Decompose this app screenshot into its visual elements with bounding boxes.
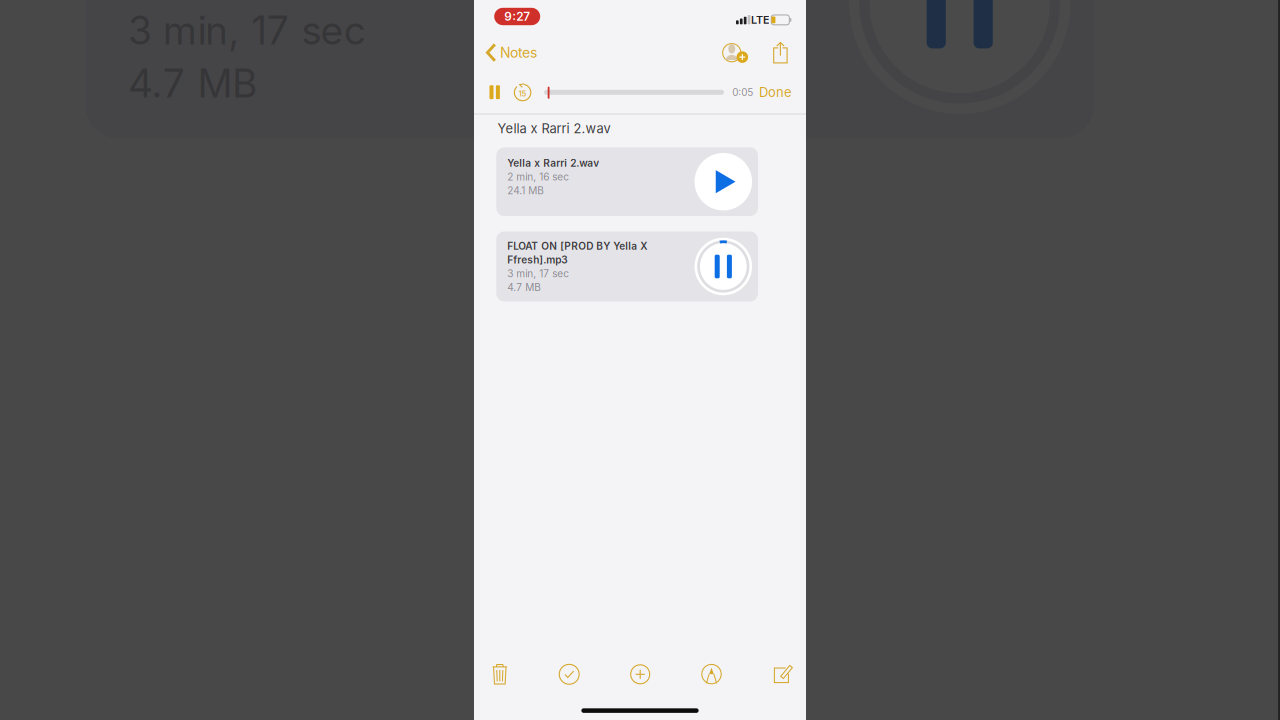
button[interactable]: Yella x Rarri 2.wav	[496, 147, 758, 216]
staticText: 9:27	[504, 9, 530, 24]
staticText: 3 min, 17 sec	[507, 267, 569, 280]
button[interactable]: Done	[753, 78, 798, 106]
staticText: FLOAT ON [PROD BY Yella X	[506, 243, 646, 255]
staticText: 24.1 MB	[507, 184, 544, 197]
button[interactable]: Skip back 15 seconds	[510, 84, 534, 106]
staticText: 3 min, 17 sec	[506, 270, 568, 283]
staticText: Yella x Rarri 2.wav	[496, 124, 609, 139]
staticText: 9:27	[503, 12, 529, 27]
staticText: Ffresh].mp3	[507, 254, 567, 266]
staticText: 15	[517, 92, 525, 101]
staticText: 15	[518, 89, 526, 98]
staticText: Notes	[500, 44, 537, 61]
button[interactable]: Pause	[482, 84, 506, 106]
staticText: 2 min, 16 sec	[506, 174, 568, 186]
button[interactable]: Delete	[478, 654, 522, 694]
button[interactable]: Share	[765, 37, 795, 69]
staticText: 4.7 MB	[506, 284, 540, 296]
staticText: 2 min, 16 sec	[507, 171, 569, 183]
staticText: Ffresh].mp3	[506, 257, 566, 269]
staticText: LTE	[750, 16, 769, 29]
button[interactable]: New note	[761, 654, 805, 694]
button[interactable]: Add attachment	[618, 654, 662, 694]
button[interactable]: New note	[760, 657, 804, 697]
button[interactable]: Notes	[480, 38, 550, 68]
staticText: 24.1 MB	[506, 187, 543, 200]
button[interactable]: Notes	[479, 41, 549, 71]
staticText: FLOAT ON [PROD BY Yella X	[507, 240, 647, 252]
button[interactable]: Markup	[688, 657, 732, 697]
button[interactable]: Yella x Rarri 2.wav	[495, 150, 757, 219]
button[interactable]: Checklist	[547, 654, 591, 694]
button[interactable]: Add People	[717, 37, 753, 69]
button[interactable]: Delete	[477, 657, 521, 697]
button[interactable]: Add attachment	[617, 657, 661, 697]
staticText: Notes	[499, 47, 536, 64]
staticText: 4.7 MB	[507, 281, 541, 293]
button[interactable]: FLOAT ON [PROD BY Yella X	[496, 231, 758, 301]
staticText: Yella x Rarri 2.wav	[497, 121, 610, 136]
button[interactable]: Checklist	[546, 657, 590, 697]
staticText: LTE	[751, 13, 770, 26]
staticText: 0:05	[731, 89, 752, 101]
button[interactable]: Pause	[483, 81, 507, 103]
button[interactable]: Skip back 15 seconds	[511, 81, 535, 103]
staticText: 0:05	[732, 86, 753, 98]
staticText: Yella x Rarri 2.wav	[507, 157, 599, 169]
staticText: Done	[759, 84, 792, 100]
button[interactable]: FLOAT ON [PROD BY Yella X	[495, 234, 757, 304]
staticText: Done	[758, 87, 791, 103]
staticText: Yella x Rarri 2.wav	[506, 160, 598, 172]
button[interactable]: Done	[752, 81, 797, 109]
button[interactable]: Add People	[716, 40, 752, 72]
button[interactable]: Markup	[689, 654, 733, 694]
button[interactable]: Share	[764, 40, 794, 72]
